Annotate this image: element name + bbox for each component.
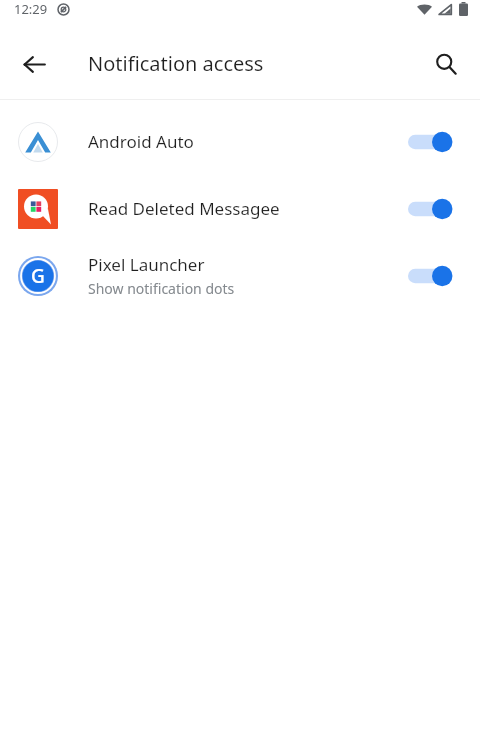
button[interactable]: Back bbox=[10, 40, 58, 88]
button[interactable]: Search bbox=[422, 40, 470, 88]
button[interactable]: Toggle Pixel Launcher bbox=[408, 259, 462, 293]
staticText: Notification access bbox=[88, 50, 264, 77]
staticText: 12:29 bbox=[14, 0, 48, 18]
button[interactable]: Toggle Android Auto bbox=[408, 125, 462, 159]
button[interactable]: Toggle Read Deleted Messagee bbox=[408, 192, 462, 226]
staticText: G bbox=[31, 263, 45, 289]
button[interactable]: Android Auto bbox=[0, 108, 480, 175]
staticText: Read Deleted Messagee bbox=[88, 197, 280, 220]
staticText: Show notification dots bbox=[88, 279, 235, 298]
button[interactable]: Read Deleted Messagee bbox=[0, 175, 480, 242]
staticText: Android Auto bbox=[88, 130, 194, 153]
staticText: Pixel Launcher bbox=[88, 253, 205, 276]
button[interactable]: G bbox=[0, 242, 480, 309]
